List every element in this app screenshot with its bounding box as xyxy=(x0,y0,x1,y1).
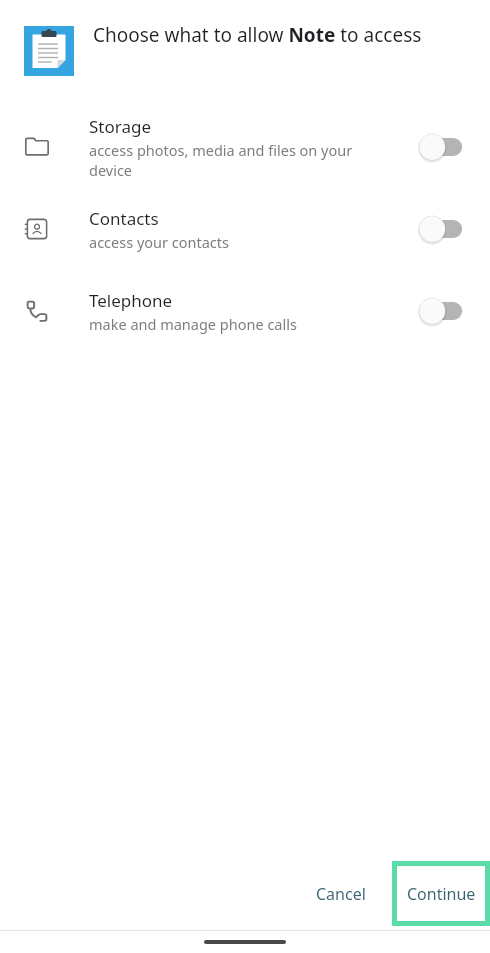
staticText: access your contacts xyxy=(89,232,362,252)
staticText: Contacts xyxy=(89,207,159,230)
button[interactable]: Contacts xyxy=(0,188,490,270)
button[interactable]: Cancel xyxy=(304,875,378,913)
button[interactable]: Contacts permission toggle xyxy=(418,214,466,244)
other: Storage xyxy=(24,134,68,160)
other: Contacts xyxy=(24,216,68,242)
button[interactable]: Storage permission toggle xyxy=(418,132,466,162)
button[interactable]: Storage xyxy=(0,106,490,188)
staticText: Cancel xyxy=(316,883,366,905)
staticText: Telephone xyxy=(89,289,173,312)
staticText: make and manage phone calls xyxy=(89,314,362,334)
staticText: Choose what to allow Note to access xyxy=(93,22,466,48)
other: Telephone xyxy=(24,298,68,324)
staticText: Continue xyxy=(407,883,476,905)
button[interactable]: Continue xyxy=(397,866,485,921)
staticText: access photos, media and files on your d… xyxy=(89,140,362,180)
button[interactable]: Telephone permission toggle xyxy=(418,296,466,326)
button[interactable]: Telephone xyxy=(0,270,490,352)
staticText: Storage xyxy=(89,115,152,138)
